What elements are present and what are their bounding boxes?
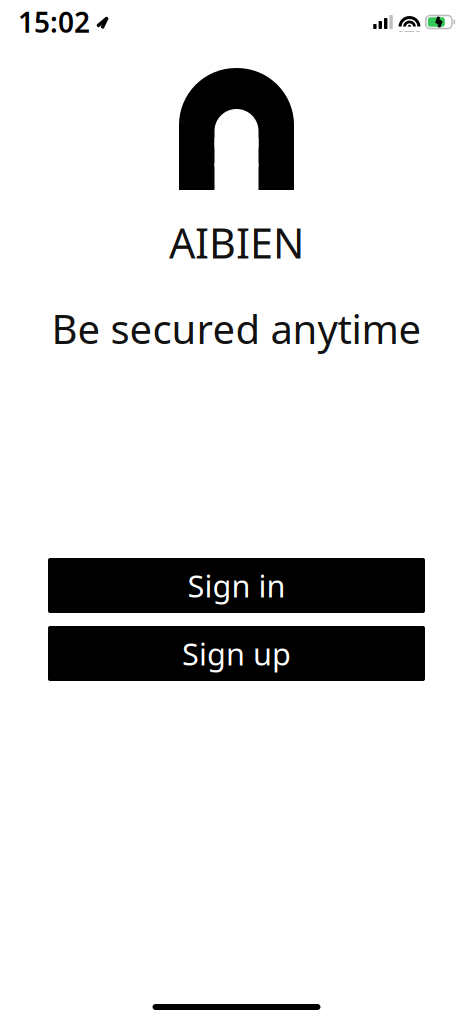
staticText: Sign up	[182, 633, 291, 674]
button[interactable]: Sign in	[48, 558, 425, 613]
staticText: Sign in	[187, 565, 285, 606]
staticText: 15:02	[18, 3, 90, 41]
button[interactable]: Sign up	[48, 626, 425, 681]
staticText: Be secured anytime	[51, 302, 421, 355]
staticText: AIBIEN	[169, 215, 304, 270]
